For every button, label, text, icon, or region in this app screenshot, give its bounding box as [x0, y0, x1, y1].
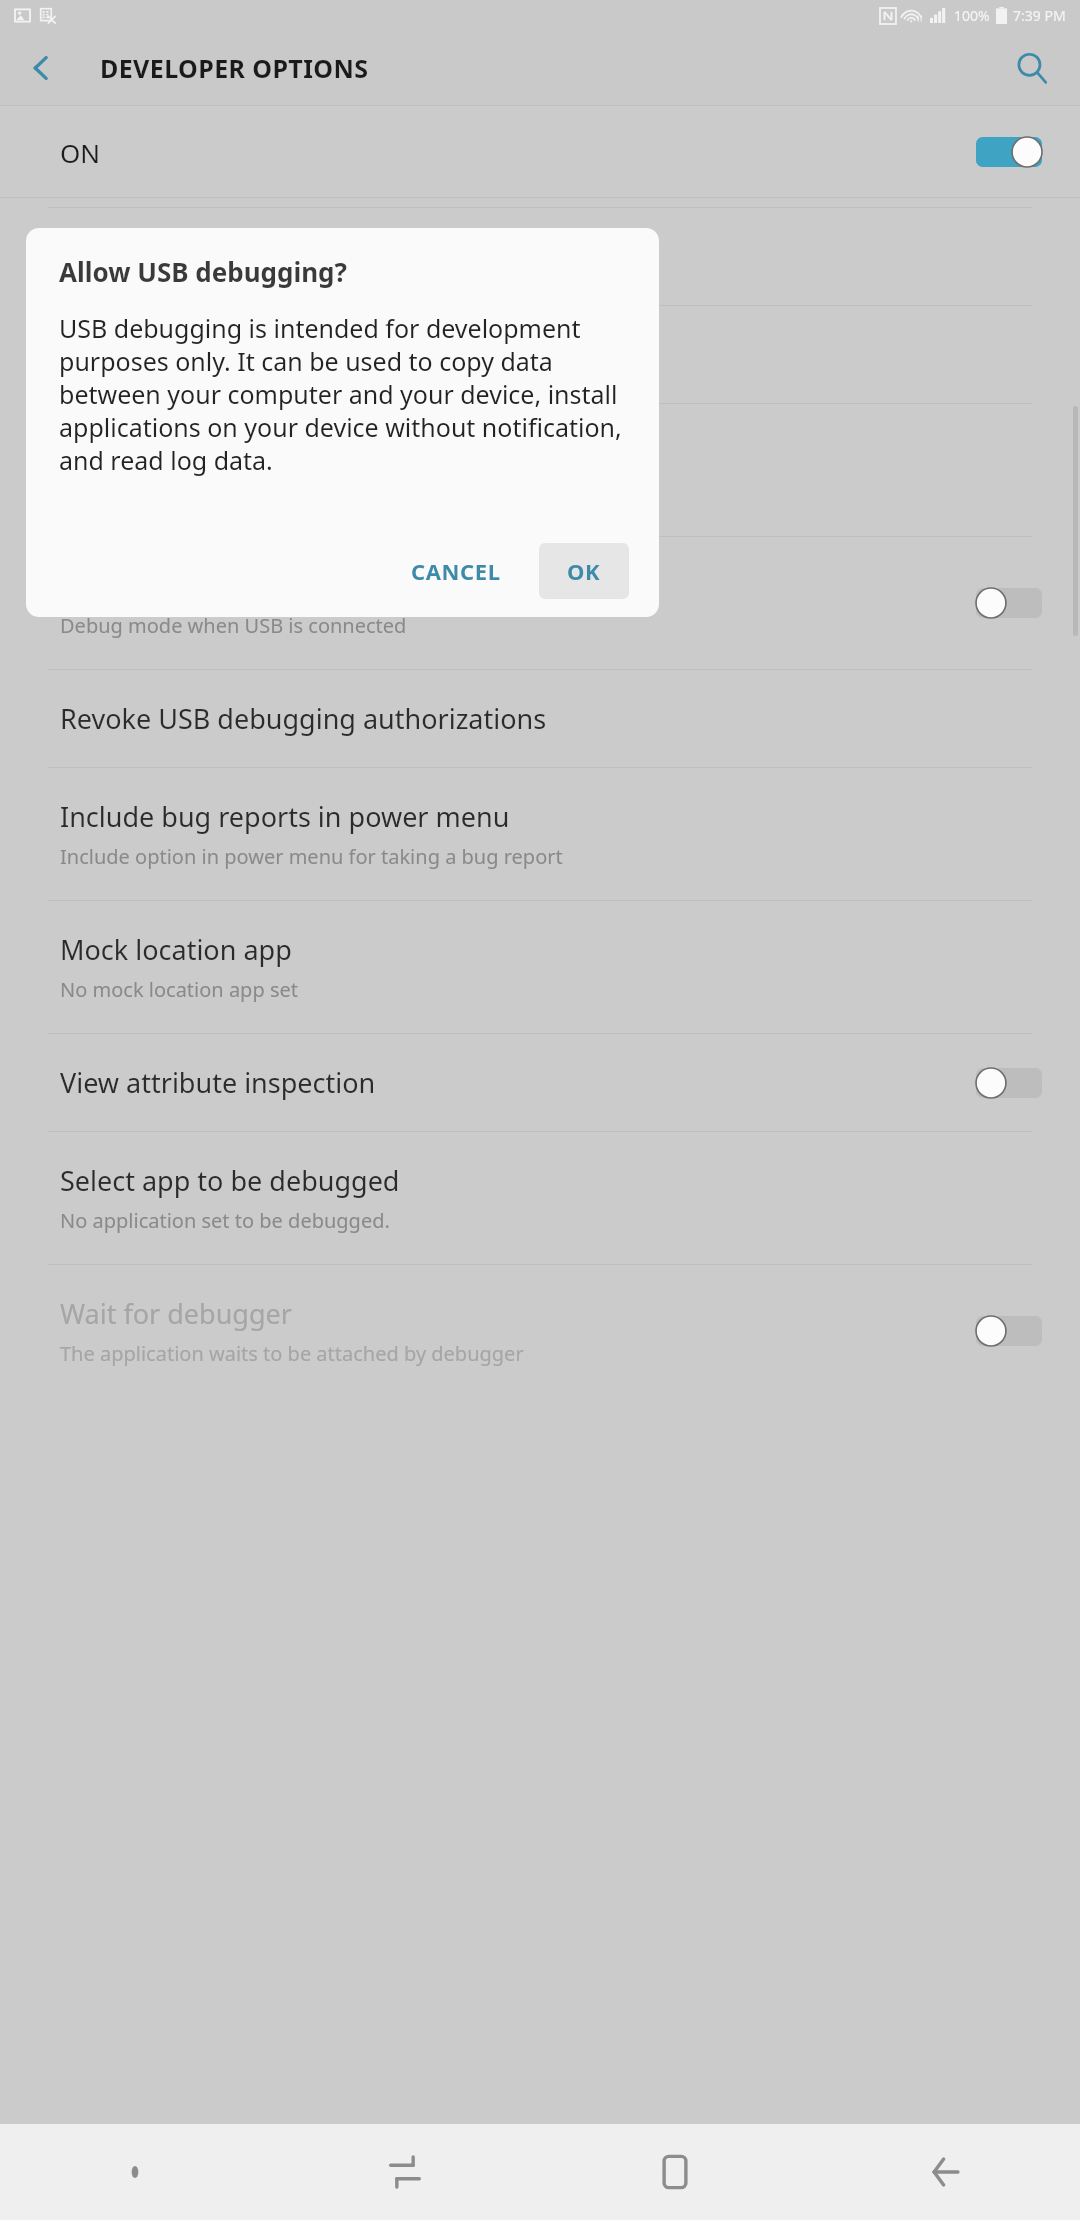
button[interactable]: Include bug reports in power menu	[0, 768, 1080, 900]
button[interactable]: Desktop backup password	[0, 404, 1080, 536]
staticText: Wait for debugger	[60, 1295, 292, 1332]
button[interactable]: Wait for debugger	[0, 1265, 1080, 1397]
staticText: Debug mode when USB is connected	[60, 612, 407, 639]
staticText: Include option in power menu for taking …	[60, 843, 563, 870]
button[interactable]	[976, 586, 1042, 620]
button[interactable]: Back	[16, 42, 68, 94]
staticText: No mock location app set	[60, 976, 298, 1003]
button[interactable]: Quick settings developer tiles	[0, 306, 1080, 403]
staticText: 7:39 PM	[1013, 6, 1066, 25]
staticText: Demo mode	[60, 238, 217, 275]
button[interactable]: Search	[1004, 40, 1060, 96]
staticText: OK	[567, 556, 601, 586]
button[interactable]: Back	[917, 2144, 973, 2200]
staticText: Select app to be debugged	[60, 1162, 400, 1199]
button[interactable]: OK	[539, 543, 629, 599]
button[interactable]: ON	[0, 106, 1080, 198]
button[interactable]: Revoke USB debugging authorizations	[0, 670, 1080, 767]
staticText: The application waits to be attached by …	[60, 1340, 524, 1367]
staticText: View attribute inspection	[60, 1064, 376, 1101]
staticText: Mock location app	[60, 931, 292, 968]
staticText: CANCEL	[411, 556, 501, 586]
staticText: DEVELOPER OPTIONS	[100, 51, 369, 85]
button[interactable]: Demo mode	[0, 208, 1080, 305]
button[interactable]: Recent apps	[377, 2144, 433, 2200]
staticText: Include bug reports in power menu	[60, 798, 510, 835]
staticText: 100%	[954, 6, 990, 25]
button[interactable]: USB debugging	[0, 537, 1080, 669]
button[interactable]: Home	[647, 2144, 703, 2200]
staticText: USB debugging is intended for developmen…	[59, 311, 629, 477]
button[interactable]: View attribute inspection	[0, 1034, 1080, 1131]
staticText: No application set to be debugged.	[60, 1207, 390, 1234]
staticText: Revoke USB debugging authorizations	[60, 700, 547, 737]
staticText: Desktop backup password	[60, 434, 394, 471]
button[interactable]	[976, 1314, 1042, 1348]
staticText: Allow USB debugging?	[59, 254, 347, 289]
staticText: ON	[60, 135, 101, 170]
button[interactable]: Menu indicator	[112, 2149, 158, 2195]
staticText: Quick settings developer tiles	[60, 336, 433, 373]
button[interactable]: CANCEL	[395, 543, 517, 599]
button[interactable]: Select app to be debugged	[0, 1132, 1080, 1264]
button[interactable]: Mock location app	[0, 901, 1080, 1033]
button[interactable]	[976, 1066, 1042, 1100]
button[interactable]	[976, 135, 1042, 169]
